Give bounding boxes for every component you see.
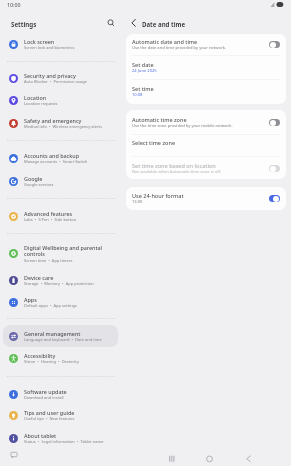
staticText: Medical info • Wireless emergency alerts (24, 124, 102, 129)
staticText: Use the date and time provided by your n… (132, 45, 227, 51)
button[interactable]: About tablet (3, 427, 118, 449)
staticText: Digital Wellbeing and parental controls (24, 244, 103, 258)
staticText: Auto Blocker • Permission usage (24, 79, 87, 84)
staticText: Accessibility (24, 352, 56, 359)
button[interactable]: Advanced features (3, 205, 118, 227)
staticText: Advanced features (24, 210, 73, 217)
button[interactable]: Digital Wellbeing and parental controls (3, 240, 118, 266)
button[interactable]: Google (3, 170, 118, 192)
staticText: Settings (11, 20, 37, 28)
button[interactable]: Switch off (269, 165, 280, 172)
button[interactable]: Feedback (10, 451, 18, 459)
button[interactable]: Security and privacy (3, 67, 118, 89)
button[interactable]: Switch off (269, 119, 280, 126)
staticText: Set date (132, 61, 154, 68)
staticText: Use the time zone provided by your mobil… (132, 123, 233, 129)
staticText: Software update (24, 388, 67, 395)
button[interactable]: Device care (3, 269, 118, 291)
staticText: Set time (132, 85, 154, 92)
staticText: Manage accounts • Smart Switch (24, 159, 88, 164)
staticText: Lock screen (24, 38, 55, 45)
button[interactable]: Home (203, 453, 216, 465)
button[interactable]: Recent apps (164, 453, 180, 465)
button[interactable]: Back (243, 453, 256, 465)
staticText: Labs • S Pen • Side button (24, 217, 77, 222)
staticText: Device care (24, 274, 54, 281)
button[interactable]: Tips and user guide (3, 404, 118, 426)
staticText: 10:00 (7, 1, 21, 8)
staticText: Google (24, 175, 43, 182)
button[interactable]: Use 24-hour format (126, 187, 286, 210)
button[interactable]: Safety and emergency (3, 112, 118, 134)
staticText: Not available when Automatic time zone i… (132, 169, 222, 175)
staticText: 13:00 (132, 199, 143, 205)
staticText: Vision • Hearing • Dexterity (24, 359, 79, 364)
staticText: 24 June 2025 (132, 68, 157, 74)
button[interactable]: Software update (3, 383, 118, 405)
button[interactable]: Back (128, 16, 140, 28)
staticText: General management (24, 330, 81, 337)
staticText: Safety and emergency (24, 117, 82, 124)
staticText: Automatic time zone (132, 116, 187, 123)
staticText: 10:08 (132, 92, 143, 98)
staticText: Download and install (24, 395, 64, 400)
staticText: Default apps • App settings (24, 303, 77, 308)
staticText: Location (24, 94, 47, 101)
button[interactable]: Lock screen (3, 33, 118, 55)
staticText: Accounts and backup (24, 152, 79, 159)
staticText: Storage • Memory • App protection (24, 281, 94, 286)
button[interactable]: Location (3, 89, 118, 111)
staticText: Google services (24, 182, 54, 187)
staticText: Screen time • App timers (24, 258, 73, 263)
staticText: Language and keyboard • Date and time (24, 337, 102, 342)
button[interactable]: Accessibility (3, 347, 118, 369)
staticText: Status • Legal information • Tablet name (24, 439, 104, 444)
staticText: Screen lock and biometrics (24, 45, 75, 50)
button[interactable]: Select time zone (126, 134, 286, 156)
button[interactable]: General management (3, 325, 118, 347)
staticText: About tablet (24, 432, 57, 439)
staticText: Automatic date and time (132, 38, 198, 45)
staticText: Date and time (142, 20, 186, 28)
staticText: Tips and user guide (24, 409, 75, 416)
button[interactable]: Switch off (269, 41, 280, 48)
staticText: Use 24-hour format (132, 192, 184, 199)
button[interactable]: Accounts and backup (3, 147, 118, 169)
button[interactable]: Set time (126, 79, 286, 104)
button[interactable]: Automatic date and time (126, 34, 286, 55)
staticText: Apps (24, 296, 37, 303)
button[interactable]: Set time zone based on location (126, 156, 286, 179)
staticText: Security and privacy (24, 72, 76, 79)
button[interactable]: Apps (3, 291, 118, 313)
staticText: Select time zone (132, 139, 176, 146)
button[interactable]: Automatic time zone (126, 110, 286, 134)
staticText: Set time zone based on location (132, 162, 216, 169)
staticText: Location requests (24, 101, 58, 106)
button[interactable]: Search (106, 18, 116, 28)
staticText: Useful tips • New features (24, 416, 75, 421)
button[interactable]: Switch on (269, 195, 280, 202)
button[interactable]: Set date (126, 55, 286, 80)
